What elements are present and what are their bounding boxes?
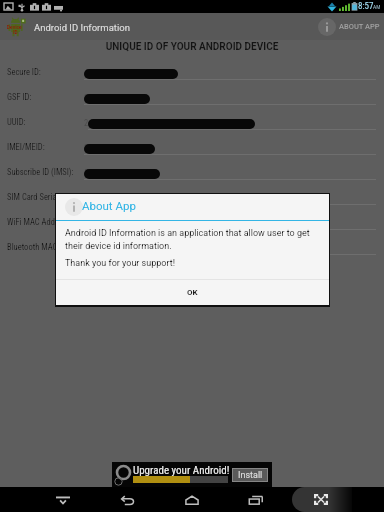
staticText: 2ce5a0f1-4ba3-42ef-9a27-b73c0ec0ff06: [84, 118, 219, 128]
staticText: Install: [238, 470, 263, 481]
staticText: Device: [7, 24, 22, 30]
staticText: 8960114061003911202: [84, 193, 164, 203]
staticText: Subscribe ID (IMSI):: [7, 167, 74, 177]
staticText: Android ID Information: [34, 22, 130, 33]
button[interactable]: Back: [113, 487, 143, 512]
staticText: Bluetooth MAC Address:: [7, 242, 89, 252]
button[interactable]: ABOUT APP: [318, 13, 380, 40]
staticText: UNIQUE ID OF YOUR ANDROID DEVICE: [0, 41, 384, 53]
button[interactable]: Install: [233, 469, 267, 481]
button[interactable]: Full screen: [292, 487, 352, 512]
staticText: ac:22:0b:b2:18:ef: [84, 243, 143, 253]
button[interactable]: OK: [56, 280, 329, 305]
button[interactable]: Hide keyboard: [48, 487, 78, 512]
button[interactable]: Recents: [241, 487, 271, 512]
button[interactable]: Home: [177, 487, 207, 512]
staticText: 44de7f51b999ad63a: [84, 68, 154, 78]
staticText: AM: [373, 4, 381, 10]
staticText: Thank you for your support!: [65, 258, 175, 269]
staticText: ABOUT APP: [339, 22, 380, 31]
staticText: Upgrade your Android!: [133, 464, 230, 477]
staticText: ac:22:0b:b2:18:f0: [84, 218, 143, 228]
staticText: IMEI/MEID:: [7, 142, 45, 152]
staticText: 8:57: [358, 1, 374, 12]
staticText: GSF ID:: [7, 92, 32, 102]
staticText: OK: [187, 288, 198, 297]
staticText: SIM Card Serial:: [7, 192, 61, 202]
staticText: Android ID Information is an application…: [65, 228, 321, 251]
button[interactable]: Upgrade your Android!: [112, 462, 272, 487]
staticText: 3403216c0314c6e: [84, 93, 147, 103]
staticText: UUID:: [7, 117, 26, 127]
staticText: ID: [13, 29, 18, 35]
staticText: Secure ID:: [7, 67, 41, 77]
staticText: About App: [82, 199, 136, 212]
staticText: 357109860706610: [84, 143, 147, 153]
staticText: WiFi MAC Address:: [7, 217, 72, 227]
staticText: 502139007158122: [84, 168, 147, 178]
